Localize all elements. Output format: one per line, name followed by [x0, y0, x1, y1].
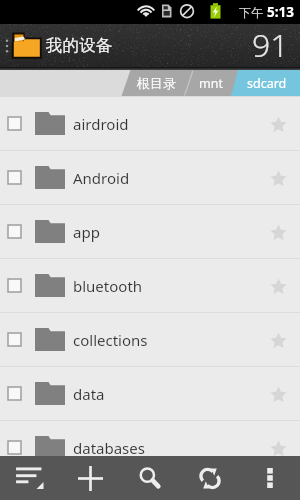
button[interactable]: Select airdroid	[8, 117, 21, 130]
button[interactable]: Favourite databases	[263, 433, 293, 463]
staticText: 91	[252, 23, 289, 66]
button[interactable]: Favourite airdroid	[263, 109, 293, 139]
button[interactable]: Search	[120, 456, 180, 500]
button[interactable]: Favourite Android	[263, 163, 293, 193]
staticText: airdroid	[73, 114, 129, 134]
staticText: data	[73, 384, 105, 404]
staticText: bluetooth	[73, 276, 143, 296]
button[interactable]: Refresh	[180, 456, 240, 500]
staticText: mnt	[199, 75, 223, 92]
button[interactable]: Select databases	[8, 441, 21, 454]
button[interactable]: sdcard	[234, 70, 300, 96]
button[interactable]: Sort	[0, 456, 60, 500]
staticText: app	[73, 222, 100, 242]
staticText: 根目录	[137, 75, 176, 91]
button[interactable]: Select bluetooth	[0, 259, 300, 312]
button[interactable]: New	[60, 456, 120, 500]
staticText: Android	[73, 168, 130, 188]
button[interactable]: 根目录	[122, 70, 190, 96]
button[interactable]: Select airdroid	[0, 97, 300, 150]
button[interactable]: Select app	[8, 225, 21, 238]
button[interactable]: Favourite app	[263, 217, 293, 247]
staticText: 5:13	[267, 3, 294, 21]
staticText: 我的设备	[46, 35, 112, 56]
staticText: sdcard	[247, 75, 287, 92]
staticText: databases	[73, 438, 145, 458]
button[interactable]: Select data	[0, 367, 300, 420]
button[interactable]: Select app	[0, 205, 300, 258]
staticText: 下午	[239, 4, 267, 20]
button[interactable]: Favourite data	[263, 379, 293, 409]
button[interactable]: Select Android	[0, 151, 300, 204]
button[interactable]: 我的设备	[0, 24, 300, 67]
button[interactable]: Select collections	[8, 333, 21, 346]
button[interactable]: Select data	[8, 387, 21, 400]
button[interactable]: Select Android	[8, 171, 21, 184]
button[interactable]: Favourite collections	[263, 325, 293, 355]
button[interactable]: Select bluetooth	[8, 279, 21, 292]
button[interactable]: Select collections	[0, 313, 300, 366]
button[interactable]: More options	[240, 456, 300, 500]
button[interactable]: mnt	[188, 70, 234, 96]
button[interactable]: Select databases	[0, 421, 300, 474]
staticText: collections	[73, 330, 148, 350]
button[interactable]: Favourite bluetooth	[263, 271, 293, 301]
